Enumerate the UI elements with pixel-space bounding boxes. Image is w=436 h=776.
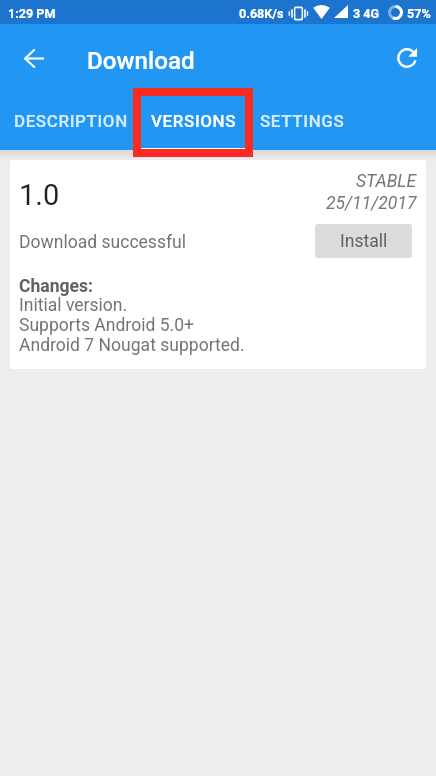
staticText: Install bbox=[340, 231, 388, 252]
staticText: 3 4G bbox=[353, 6, 380, 21]
staticText: SETTINGS bbox=[260, 111, 345, 131]
staticText: Download successful bbox=[19, 232, 187, 253]
button[interactable]: 1.0 bbox=[10, 160, 426, 369]
button[interactable]: SETTINGS bbox=[249, 92, 355, 150]
button[interactable]: VERSIONS bbox=[138, 92, 249, 150]
staticText: STABLE bbox=[356, 171, 417, 192]
staticText: 25/11/2017 bbox=[326, 193, 417, 214]
staticText: 1:29 PM bbox=[8, 6, 56, 21]
staticText: 1.0 bbox=[19, 178, 60, 212]
button[interactable]: Refresh bbox=[378, 29, 436, 87]
button[interactable]: Navigate up bbox=[5, 29, 63, 87]
button[interactable]: Install bbox=[315, 224, 412, 258]
staticText: DESCRIPTION bbox=[14, 111, 128, 131]
staticText: Changes: bbox=[19, 276, 93, 297]
staticText: 0.68K/s bbox=[239, 6, 284, 21]
button[interactable]: DESCRIPTION bbox=[3, 92, 138, 150]
staticText: VERSIONS bbox=[151, 111, 237, 131]
staticText: Download bbox=[87, 47, 195, 75]
staticText: Initial version. Supports Android 5.0+ A… bbox=[19, 295, 245, 355]
staticText: 57% bbox=[407, 6, 431, 21]
